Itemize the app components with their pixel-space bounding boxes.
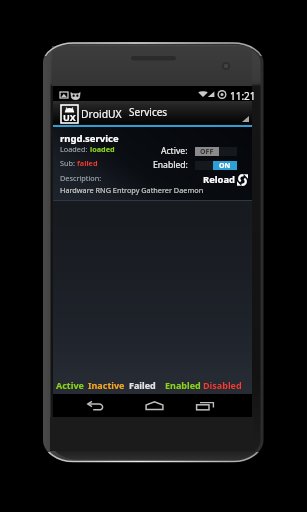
button[interactable]: Services — [129, 101, 168, 125]
button[interactable]: Active — [56, 375, 84, 394]
staticText: DroidUX — [81, 107, 122, 121]
button[interactable]: UX — [61, 105, 78, 123]
staticText: Loaded: — [60, 144, 90, 154]
staticText: Sub: — [60, 158, 77, 168]
button[interactable]: Recent apps — [188, 394, 222, 417]
button[interactable]: Disabled — [203, 375, 242, 394]
staticText: Enabled — [165, 379, 201, 391]
staticText: rngd.service — [60, 132, 119, 145]
button[interactable]: Failed — [129, 375, 156, 394]
button[interactable]: Enabled — [165, 375, 201, 394]
staticText: Failed — [129, 379, 156, 391]
staticText: Reload — [203, 173, 235, 186]
button[interactable]: Reload — [203, 173, 248, 186]
button[interactable]: Inactive — [88, 375, 125, 394]
staticText: Enabled: — [153, 159, 188, 171]
staticText: 11:21 — [230, 89, 256, 103]
button[interactable]: ON — [195, 161, 237, 170]
staticText: Description: — [60, 173, 102, 183]
staticText: Active — [56, 379, 84, 391]
staticText: Services — [129, 105, 168, 119]
staticText: Inactive — [88, 379, 125, 391]
staticText: UX — [63, 111, 76, 123]
button[interactable]: OFF — [195, 147, 237, 156]
staticText: OFF — [200, 147, 214, 156]
button[interactable]: rngd.service — [53, 127, 252, 200]
button[interactable]: Back — [78, 394, 112, 417]
staticText: ON — [219, 161, 231, 170]
staticText: loaded — [90, 144, 115, 154]
staticText: Active: — [161, 145, 188, 157]
staticText: Hardware RNG Entropy Gatherer Daemon — [60, 185, 204, 195]
staticText: failed — [77, 158, 98, 168]
button[interactable]: Home — [137, 394, 171, 417]
staticText: Disabled — [203, 379, 242, 391]
